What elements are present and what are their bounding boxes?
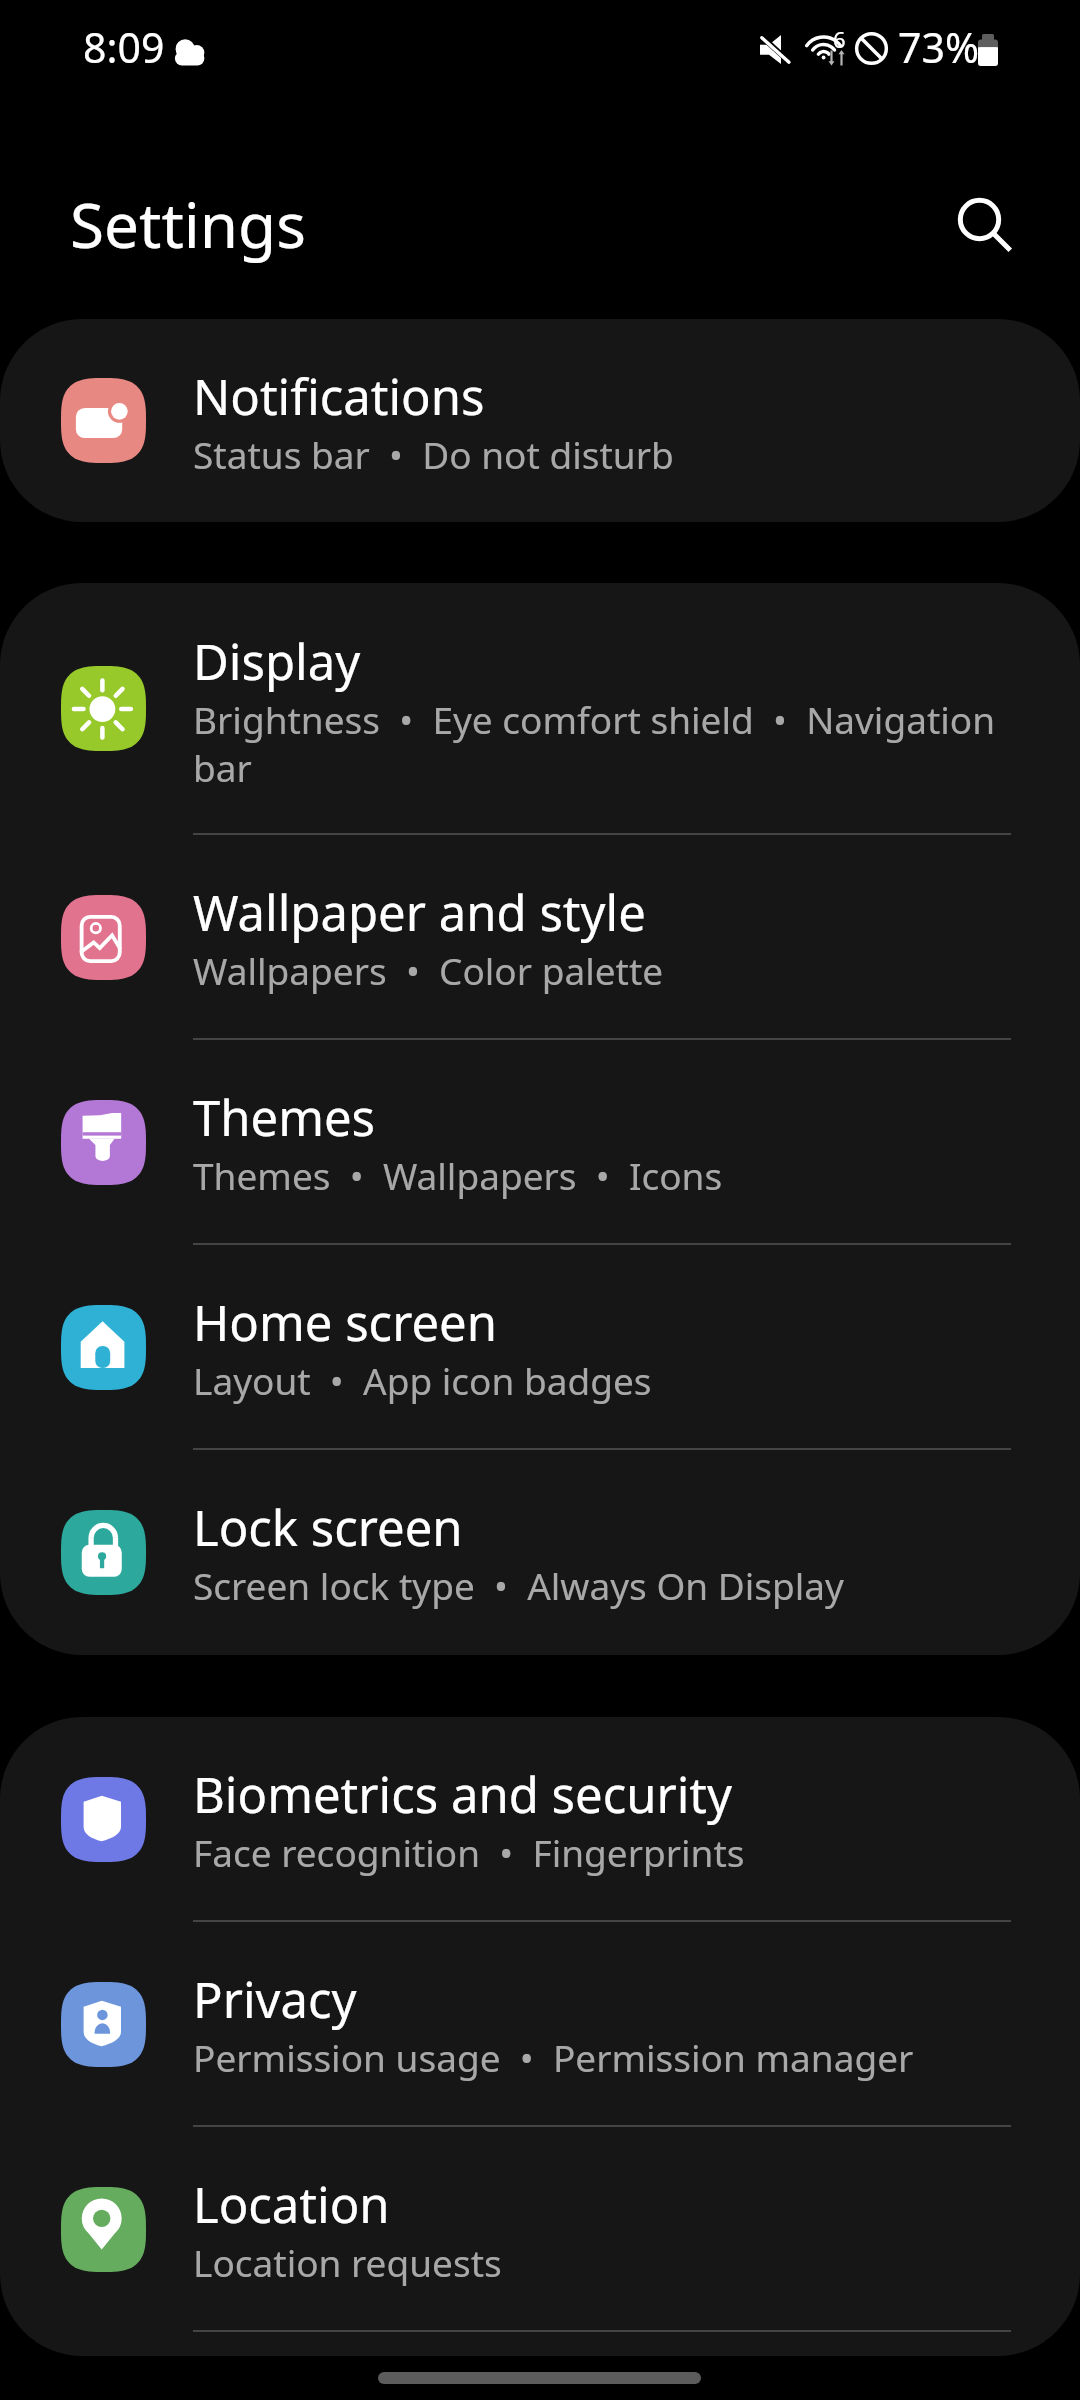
staticText: Themes • Wallpapers • Icons bbox=[193, 1150, 1005, 1200]
staticText: Face recognition • Fingerprints bbox=[193, 1827, 1005, 1877]
staticText: 8:09 bbox=[83, 19, 165, 75]
staticText: Home screen bbox=[193, 1289, 1005, 1356]
staticText: 73% bbox=[898, 19, 979, 75]
button[interactable]: Lock screen bbox=[0, 1450, 1080, 1655]
button[interactable]: Notifications bbox=[0, 319, 1080, 522]
staticText: Permission usage • Permission manager bbox=[193, 2032, 1005, 2082]
button[interactable]: Biometrics and security bbox=[0, 1717, 1080, 1922]
staticText: Privacy bbox=[193, 1966, 1005, 2033]
staticText: Layout • App icon badges bbox=[193, 1355, 1005, 1405]
staticText: Notifications bbox=[193, 363, 1005, 430]
staticText: Location bbox=[193, 2171, 1005, 2238]
staticText: Wallpaper and style bbox=[193, 879, 1005, 946]
button[interactable]: Home screen bbox=[0, 1245, 1080, 1450]
staticText: Status bar • Do not disturb bbox=[193, 429, 1005, 479]
staticText: Display bbox=[193, 628, 1005, 695]
button[interactable]: Wallpaper and style bbox=[0, 835, 1080, 1040]
button[interactable]: Search bbox=[935, 175, 1025, 265]
button[interactable]: Themes bbox=[0, 1040, 1080, 1245]
button[interactable]: Privacy bbox=[0, 1922, 1080, 2127]
button[interactable]: Display bbox=[0, 583, 1080, 835]
staticText: 6 bbox=[833, 24, 846, 54]
staticText: Brightness • Eye comfort shield • Naviga… bbox=[193, 694, 1005, 793]
staticText: Wallpapers • Color palette bbox=[193, 945, 1005, 995]
staticText: Themes bbox=[193, 1084, 1005, 1151]
staticText: Location requests bbox=[193, 2237, 1005, 2287]
staticText: Biometrics and security bbox=[193, 1761, 1005, 1828]
staticText: Screen lock type • Always On Display bbox=[193, 1560, 1005, 1610]
staticText: Settings bbox=[70, 182, 306, 266]
button[interactable]: Location bbox=[0, 2127, 1080, 2332]
staticText: Lock screen bbox=[193, 1494, 1005, 1561]
